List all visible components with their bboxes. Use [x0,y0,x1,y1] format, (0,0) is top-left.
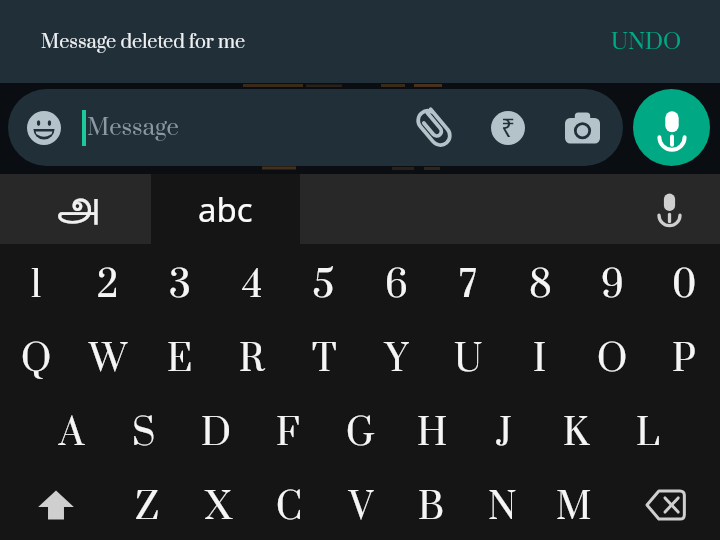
button[interactable]: Attach [408,102,460,154]
staticText: 8 [529,262,552,309]
button[interactable]: 5 [288,244,360,318]
staticText: 5 [313,262,335,309]
button[interactable]: 6 [360,244,432,318]
staticText: K [563,410,589,457]
staticText: P [672,336,696,383]
staticText: 9 [601,262,624,309]
button[interactable]: 3 [144,244,216,318]
button[interactable]: W [72,318,144,392]
button[interactable]: Emoji [20,104,68,152]
staticText: I [533,336,547,383]
button[interactable]: S [108,392,180,466]
button[interactable]: 4 [216,244,288,318]
button[interactable]: Camera [556,102,608,154]
staticText: Message [87,113,179,143]
button[interactable]: V [325,466,396,540]
staticText: UNDO [611,28,682,56]
button[interactable]: F [252,392,324,466]
button[interactable]: Shift [0,466,111,540]
staticText: 4 [242,262,263,309]
staticText: Message deleted for me [41,30,246,54]
staticText: C [276,484,303,531]
button[interactable]: T [288,318,360,392]
staticText: J [496,410,512,457]
button[interactable]: E [144,318,216,392]
staticText: 1 [30,262,43,309]
staticText: S [132,410,156,457]
button[interactable]: A [36,392,108,466]
button[interactable]: N [467,466,538,540]
button[interactable]: R [216,318,288,392]
button[interactable]: G [324,392,396,466]
staticText: அ [54,184,98,226]
staticText: L [636,410,660,457]
staticText: H [417,410,448,457]
button[interactable]: 1 [0,244,72,318]
button[interactable]: Voice message [633,89,710,166]
staticText: E [167,336,193,383]
button[interactable]: Z [111,466,183,540]
staticText: Z [135,484,159,531]
button[interactable]: X [183,466,254,540]
button[interactable]: H [396,392,468,466]
button[interactable]: K [540,392,612,466]
staticText: D [201,410,231,457]
staticText: abc [198,187,253,232]
staticText: T [312,336,337,383]
button[interactable]: Payment [482,102,534,154]
button[interactable]: U [432,318,504,392]
button[interactable]: 8 [504,244,576,318]
button[interactable]: C [254,466,325,540]
button[interactable]: abc [151,174,300,244]
button[interactable]: O [576,318,648,392]
button[interactable]: அ [0,174,151,244]
button[interactable]: 2 [72,244,144,318]
button[interactable]: Voice input [300,174,720,244]
button[interactable]: D [180,392,252,466]
staticText: 7 [459,262,477,309]
button[interactable]: J [468,392,540,466]
staticText: Q [21,336,52,383]
button[interactable]: 7 [432,244,504,318]
staticText: 6 [385,262,408,309]
button[interactable]: M [538,466,609,540]
staticText: M [556,484,592,531]
button[interactable]: B [396,466,467,540]
staticText: Y [385,336,408,383]
staticText: N [488,484,517,531]
staticText: 2 [97,262,119,309]
staticText: A [59,410,85,457]
button[interactable]: L [612,392,684,466]
staticText: F [276,410,300,457]
staticText: ₹ [501,110,516,144]
staticText: X [205,484,232,531]
staticText: O [597,336,628,383]
staticText: B [418,484,445,531]
button[interactable]: I [504,318,576,392]
button[interactable]: Q [0,318,72,392]
button[interactable]: P [648,318,720,392]
staticText: U [454,336,483,383]
button[interactable]: 9 [576,244,648,318]
staticText: 3 [169,262,191,309]
staticText: V [349,484,373,531]
staticText: 0 [672,262,697,309]
staticText: G [346,410,375,457]
staticText: W [89,336,127,383]
staticText: R [239,336,265,383]
button[interactable]: UNDO [603,20,690,64]
button[interactable]: Backspace [609,466,720,540]
button[interactable]: 0 [648,244,720,318]
button[interactable]: Y [360,318,432,392]
